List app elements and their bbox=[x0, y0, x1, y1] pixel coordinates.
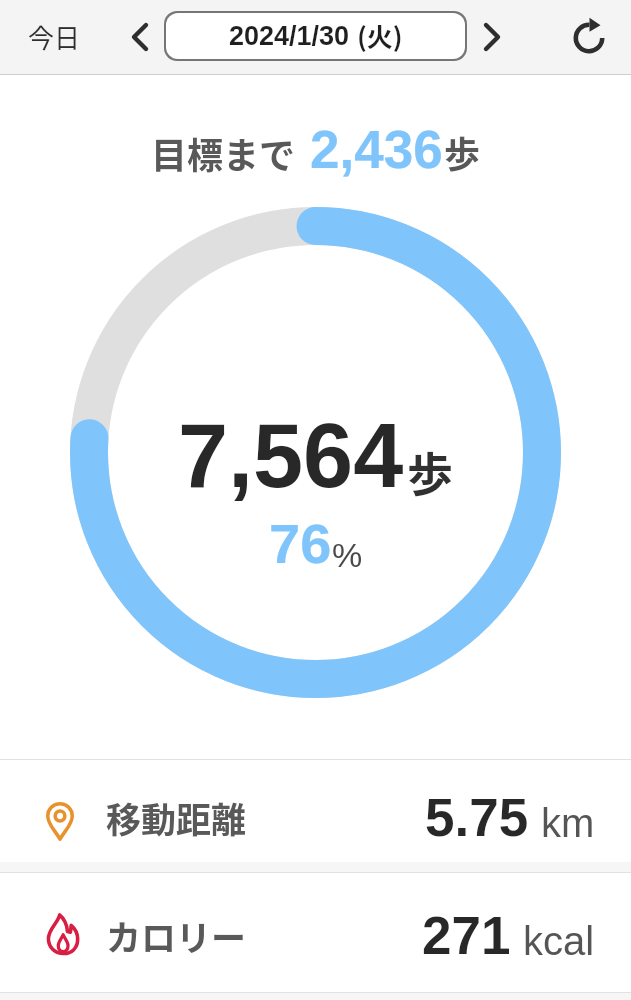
staticText: 7,564 bbox=[178, 406, 404, 507]
button[interactable]: カロリー bbox=[0, 873, 631, 993]
staticText: (火) bbox=[357, 17, 403, 55]
staticText: 76 bbox=[269, 512, 332, 575]
button[interactable]: Previous day bbox=[112, 11, 164, 63]
button[interactable]: Next day bbox=[467, 11, 519, 63]
staticText: カロリー bbox=[106, 910, 247, 961]
staticText: km bbox=[541, 801, 595, 846]
button[interactable]: 移動距離 bbox=[0, 760, 631, 862]
staticText: 2024/1/30 bbox=[229, 21, 357, 51]
staticText: 歩 bbox=[407, 438, 453, 505]
button[interactable]: 今日 bbox=[12, 8, 97, 66]
staticText: 目標まで bbox=[151, 127, 296, 179]
staticText: kcal bbox=[523, 919, 595, 964]
button[interactable]: Refresh bbox=[563, 11, 615, 63]
staticText: 2,436 bbox=[310, 120, 443, 179]
staticText: 移動距離 bbox=[106, 792, 247, 843]
staticText: 271 bbox=[422, 906, 511, 965]
button[interactable]: 2024/1/30 bbox=[166, 13, 465, 59]
staticText: 5.75 bbox=[425, 788, 529, 847]
staticText: 歩 bbox=[444, 126, 481, 178]
staticText: 今日 bbox=[28, 18, 81, 56]
staticText: % bbox=[332, 536, 363, 574]
